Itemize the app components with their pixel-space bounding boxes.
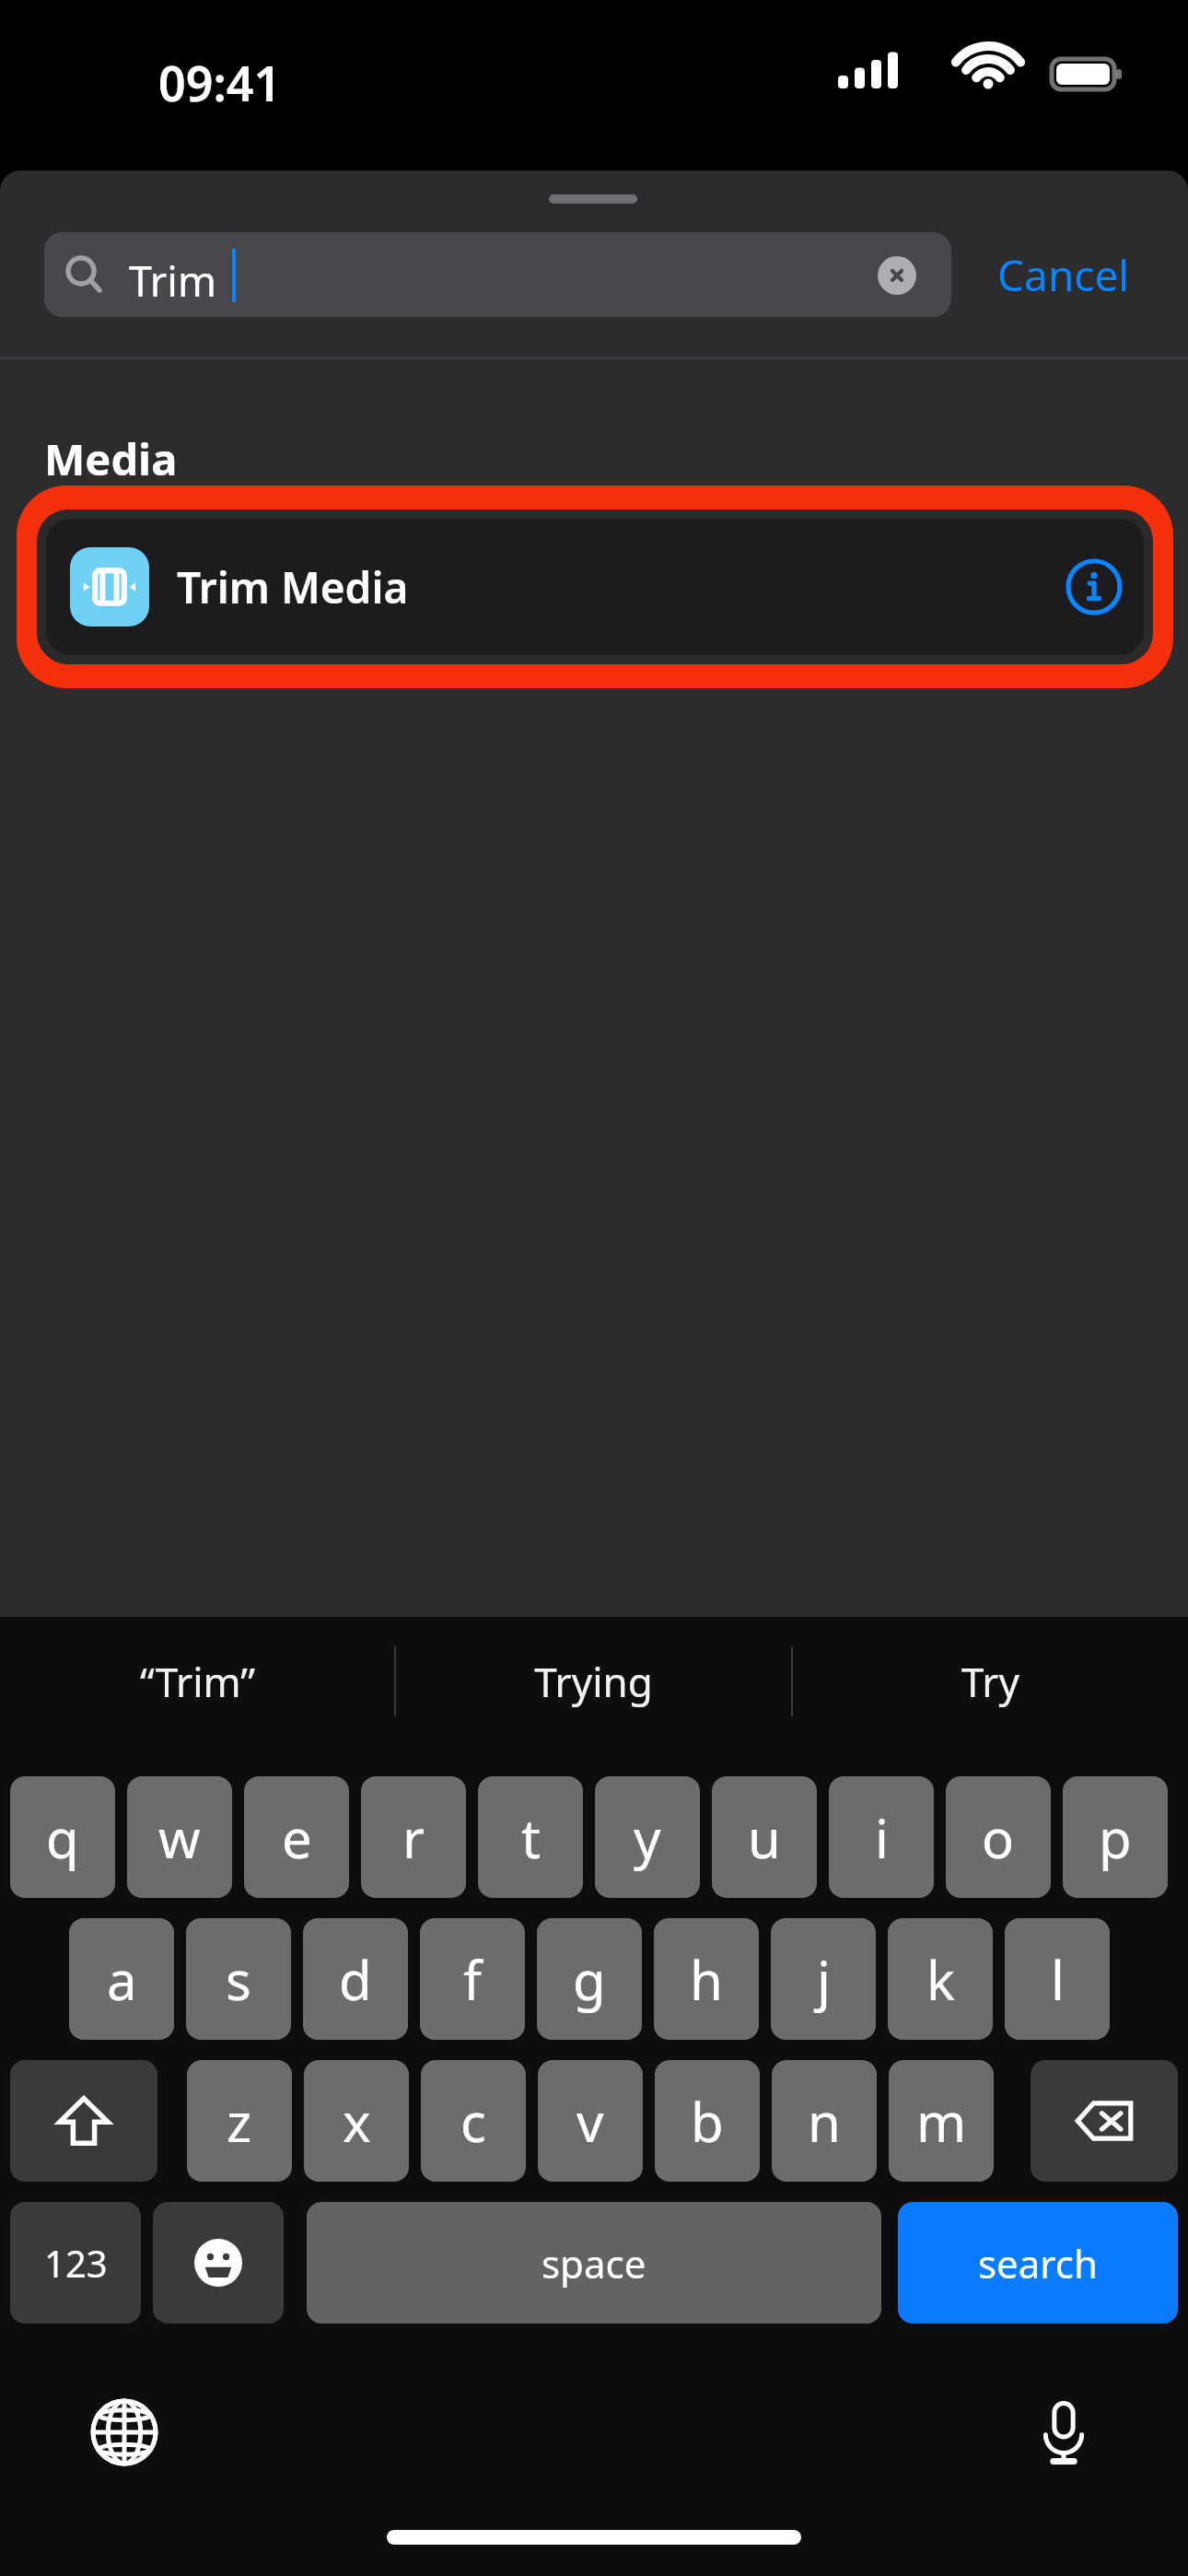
button[interactable]: Details bbox=[1057, 550, 1131, 624]
button[interactable]: s bbox=[186, 1918, 291, 2040]
button[interactable]: 123 bbox=[10, 2202, 141, 2324]
staticText: Try bbox=[961, 1654, 1019, 1709]
button[interactable]: d bbox=[303, 1918, 408, 2040]
button[interactable]: g bbox=[537, 1918, 642, 2040]
staticText: a bbox=[107, 1943, 137, 2016]
button[interactable]: Try bbox=[793, 1626, 1188, 1737]
staticText: t bbox=[521, 1801, 541, 1874]
staticText: m bbox=[916, 2085, 967, 2158]
button[interactable]: o bbox=[946, 1776, 1051, 1898]
button[interactable]: x bbox=[304, 2060, 409, 2182]
staticText: n bbox=[808, 2085, 841, 2158]
staticText: b bbox=[691, 2085, 724, 2158]
button[interactable]: k bbox=[888, 1918, 993, 2040]
staticText: g bbox=[573, 1943, 606, 2016]
staticText: v bbox=[577, 2085, 604, 2158]
button[interactable]: b bbox=[655, 2060, 760, 2182]
button[interactable]: z bbox=[187, 2060, 292, 2182]
button[interactable]: q bbox=[10, 1776, 115, 1898]
button[interactable]: “Trim” bbox=[0, 1626, 394, 1737]
button[interactable]: l bbox=[1005, 1918, 1110, 2040]
button[interactable]: r bbox=[361, 1776, 466, 1898]
button[interactable]: Clear text bbox=[878, 256, 916, 295]
staticText: 123 bbox=[44, 2238, 108, 2288]
staticText: w bbox=[158, 1801, 201, 1874]
staticText: x bbox=[343, 2085, 371, 2158]
button[interactable]: Trying bbox=[396, 1626, 791, 1737]
staticText: Trying bbox=[534, 1654, 653, 1709]
button[interactable]: search bbox=[898, 2202, 1178, 2324]
button[interactable]: Dictation bbox=[1013, 2382, 1114, 2483]
button[interactable]: c bbox=[421, 2060, 526, 2182]
button[interactable]: t bbox=[478, 1776, 583, 1898]
staticText: y bbox=[634, 1801, 661, 1874]
staticText: space bbox=[542, 2237, 646, 2289]
staticText: k bbox=[926, 1943, 955, 2016]
button[interactable]: f bbox=[420, 1918, 525, 2040]
staticText: search bbox=[978, 2237, 1098, 2289]
button[interactable]: Shift bbox=[10, 2060, 157, 2182]
staticText: q bbox=[46, 1801, 79, 1874]
staticText: Media bbox=[44, 429, 178, 488]
staticText: h bbox=[690, 1943, 723, 2016]
button[interactable]: u bbox=[712, 1776, 817, 1898]
staticText: c bbox=[460, 2085, 486, 2158]
button[interactable]: Trim bbox=[44, 232, 951, 317]
button[interactable]: Trim Media bbox=[46, 519, 1144, 655]
staticText: p bbox=[1099, 1801, 1132, 1874]
button[interactable]: i bbox=[829, 1776, 934, 1898]
staticText: o bbox=[982, 1801, 1015, 1874]
button[interactable]: y bbox=[595, 1776, 700, 1898]
staticText: “Trim” bbox=[140, 1654, 255, 1709]
staticText: f bbox=[463, 1943, 482, 2016]
staticText: Cancel bbox=[997, 246, 1130, 304]
button[interactable]: p bbox=[1063, 1776, 1168, 1898]
staticText: u bbox=[748, 1801, 781, 1874]
button[interactable]: Delete bbox=[1031, 2060, 1178, 2182]
staticText: z bbox=[227, 2085, 252, 2158]
staticText: i bbox=[875, 1801, 889, 1874]
staticText: j bbox=[817, 1943, 831, 2016]
button[interactable]: n bbox=[772, 2060, 877, 2182]
staticText: d bbox=[339, 1943, 372, 2016]
button[interactable]: space bbox=[307, 2202, 881, 2324]
button[interactable]: w bbox=[127, 1776, 232, 1898]
staticText: Trim bbox=[129, 252, 217, 309]
staticText: 09:41 bbox=[158, 50, 282, 115]
staticText: s bbox=[226, 1943, 251, 2016]
button[interactable]: v bbox=[538, 2060, 643, 2182]
button[interactable]: a bbox=[69, 1918, 174, 2040]
staticText: r bbox=[402, 1801, 425, 1874]
staticText: Trim Media bbox=[177, 558, 409, 616]
button[interactable]: m bbox=[889, 2060, 994, 2182]
button[interactable]: Change keyboard bbox=[74, 2382, 175, 2483]
button[interactable]: h bbox=[654, 1918, 759, 2040]
button[interactable]: e bbox=[244, 1776, 349, 1898]
button[interactable]: Cancel bbox=[997, 232, 1148, 317]
staticText: l bbox=[1051, 1943, 1065, 2016]
staticText: e bbox=[282, 1801, 312, 1874]
button[interactable]: j bbox=[771, 1918, 876, 2040]
button[interactable]: Emoji bbox=[153, 2202, 284, 2324]
